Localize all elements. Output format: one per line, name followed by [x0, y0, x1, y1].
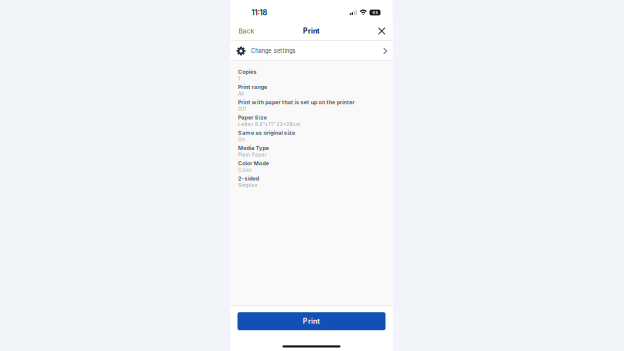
staticText: Letter 8.5"x11" 22x28cm [238, 121, 300, 127]
staticText: All [238, 91, 244, 97]
staticText: 11:18 [251, 8, 267, 17]
staticText: Change settings [251, 48, 295, 54]
button[interactable]: Close [375, 24, 388, 38]
staticText: Print [303, 317, 320, 325]
staticText: On [238, 136, 245, 142]
staticText: 65 [372, 10, 377, 15]
staticText: Plain Paper [238, 152, 267, 158]
button[interactable]: Print [237, 312, 385, 330]
button[interactable]: Back [235, 23, 257, 39]
staticText: 2-sided [238, 175, 259, 182]
staticText: Media Type [238, 145, 269, 151]
button[interactable]: Change settings [230, 41, 392, 61]
staticText: Color Mode [238, 160, 269, 166]
staticText: Off [238, 106, 247, 112]
staticText: Paper Size [238, 114, 267, 121]
staticText: 1 [238, 76, 240, 81]
staticText: Copies [238, 69, 256, 75]
staticText: Simplex [238, 182, 258, 188]
staticText: Color [238, 167, 252, 173]
staticText: Same as original size [238, 130, 295, 136]
staticText: Print with paper that is set up on the p… [238, 99, 354, 106]
staticText: Back [238, 27, 254, 35]
staticText: Print [303, 27, 320, 35]
staticText: Print range [238, 84, 267, 90]
